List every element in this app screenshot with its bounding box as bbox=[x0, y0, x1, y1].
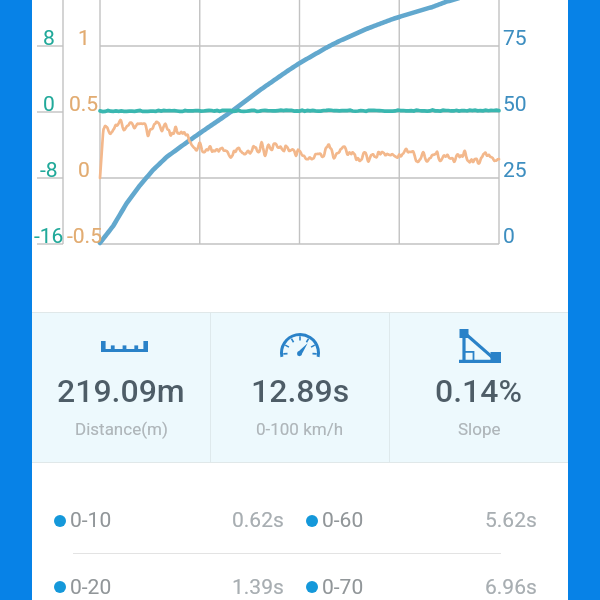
button[interactable]: Slope bbox=[390, 312, 568, 463]
staticText: 219.09m bbox=[57, 372, 185, 410]
other: Slope bbox=[457, 329, 501, 363]
staticText: 0.14% bbox=[435, 372, 523, 410]
other: 0-100 km/h bbox=[280, 333, 320, 359]
staticText: 0-100 km/h bbox=[256, 419, 344, 439]
button[interactable]: 0-20 bbox=[54, 554, 284, 600]
staticText: -16 bbox=[34, 224, 64, 248]
staticText: 0 bbox=[43, 92, 55, 116]
staticText: 1.39s bbox=[232, 575, 284, 600]
button[interactable]: Distance bbox=[32, 312, 210, 463]
staticText: 0 bbox=[78, 158, 90, 182]
button[interactable]: 0-70 bbox=[306, 554, 537, 600]
staticText: 1 bbox=[78, 26, 90, 50]
staticText: 0-70 bbox=[322, 575, 364, 600]
staticText: -8 bbox=[40, 158, 58, 182]
staticText: 25 bbox=[503, 158, 527, 182]
staticText: Slope bbox=[458, 419, 501, 439]
staticText: 75 bbox=[503, 26, 527, 50]
staticText: 8 bbox=[43, 26, 55, 50]
button[interactable]: 0-10 bbox=[54, 488, 284, 553]
button[interactable]: 0-60 bbox=[306, 488, 537, 553]
staticText: 0.5 bbox=[69, 92, 99, 116]
staticText: -0.5 bbox=[67, 224, 102, 248]
staticText: 0.62s bbox=[232, 508, 284, 533]
staticText: 12.89s bbox=[251, 372, 350, 410]
staticText: 0-20 bbox=[70, 575, 112, 600]
other: Distance bbox=[101, 341, 148, 352]
staticText: 6.96s bbox=[485, 575, 537, 600]
staticText: 0-60 bbox=[322, 508, 364, 533]
staticText: 0 bbox=[503, 224, 515, 248]
staticText: Distance(m) bbox=[75, 419, 168, 439]
staticText: 0-10 bbox=[70, 508, 112, 533]
staticText: 5.62s bbox=[485, 508, 537, 533]
button[interactable]: 0-100 km/h bbox=[211, 312, 389, 463]
staticText: 50 bbox=[503, 92, 527, 116]
